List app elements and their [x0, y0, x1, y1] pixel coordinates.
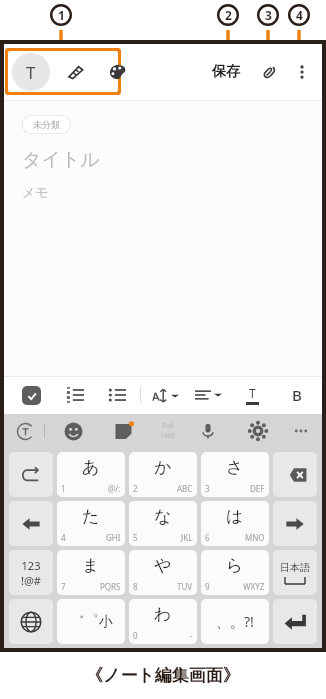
button[interactable]: さ	[201, 452, 269, 497]
staticText: 1	[58, 7, 65, 23]
staticText: 日本語	[280, 561, 310, 574]
staticText: 《ノート編集画面》	[86, 665, 240, 686]
staticText: 9	[205, 581, 210, 592]
button[interactable]: Numbered list	[62, 382, 88, 408]
button[interactable]: Japanese space	[273, 550, 317, 595]
staticText: PQRS	[100, 581, 121, 592]
button[interactable]: Bulleted list	[104, 382, 130, 408]
button[interactable]: More	[290, 420, 312, 442]
staticText: 1	[61, 483, 66, 494]
button[interactable]: た	[57, 501, 125, 546]
staticText: は	[226, 506, 244, 527]
button[interactable]: Cursor right	[273, 501, 317, 546]
button[interactable]: Emoji	[61, 419, 85, 443]
button[interactable]: Keyboard settings	[246, 419, 270, 443]
button[interactable]: 123 !@#	[9, 550, 53, 595]
button[interactable]: ら	[201, 550, 269, 595]
staticText: か	[154, 457, 172, 478]
button[interactable]: Voice input	[196, 419, 220, 443]
button[interactable]: ま	[57, 550, 125, 595]
button[interactable]: や	[129, 550, 197, 595]
staticText: GHI	[106, 532, 121, 543]
button[interactable]: Draw	[60, 56, 92, 88]
button[interactable]: 保存	[212, 52, 240, 92]
button[interactable]: ゛゜小	[57, 599, 125, 644]
staticText: あ	[82, 457, 100, 478]
staticText: や	[154, 555, 172, 576]
staticText: @/:	[108, 483, 121, 494]
staticText: タイトル	[22, 148, 100, 172]
staticText: わ	[154, 604, 172, 625]
staticText: 4	[61, 532, 66, 543]
staticText: ABC	[177, 483, 193, 494]
button[interactable]: Delete	[273, 452, 317, 497]
staticText: DEF	[250, 483, 265, 494]
button[interactable]: Alignment	[195, 387, 222, 403]
staticText: T	[26, 61, 36, 84]
staticText: 7	[61, 581, 66, 592]
staticText: Half	[161, 431, 175, 441]
staticText: 5	[133, 532, 138, 543]
button[interactable]: Translate	[12, 418, 38, 444]
staticText: WXYZ	[243, 581, 265, 592]
button[interactable]: か	[129, 452, 197, 497]
staticText: 未分類	[33, 119, 60, 130]
button[interactable]: Undo	[9, 452, 53, 497]
staticText: ま	[82, 555, 100, 576]
staticText: MNO	[245, 532, 265, 543]
button[interactable]: Text color	[240, 383, 264, 407]
staticText: 保存	[212, 63, 240, 81]
staticText: 8	[133, 581, 138, 592]
button[interactable]: Stickers	[111, 419, 135, 443]
staticText: ゛゜小	[70, 613, 113, 631]
staticText: な	[154, 506, 172, 527]
button[interactable]: B	[284, 382, 310, 408]
button[interactable]: Attach	[254, 57, 284, 87]
staticText: 0	[133, 630, 138, 641]
button[interactable]: Cursor left	[9, 501, 53, 546]
button[interactable]: Enter	[273, 599, 317, 644]
button[interactable]: Change language	[9, 599, 53, 644]
staticText: メモ	[22, 184, 49, 200]
staticText: -	[190, 630, 193, 641]
staticText: 3	[265, 7, 272, 23]
button[interactable]: わ	[129, 599, 197, 644]
staticText: 2	[225, 7, 232, 23]
staticText: さ	[226, 457, 244, 478]
button[interactable]: More options	[288, 58, 316, 86]
button[interactable]: Text mode	[12, 53, 50, 91]
button[interactable]: Font size	[151, 387, 179, 404]
staticText: 6	[205, 532, 210, 543]
staticText: 123 !@#	[21, 558, 41, 588]
button[interactable]: あ	[57, 452, 125, 497]
button[interactable]: Palette	[102, 56, 134, 88]
button[interactable]: 未分類	[22, 115, 71, 134]
staticText: JKL	[181, 532, 193, 543]
staticText: 4	[296, 7, 303, 23]
staticText: Full	[162, 421, 174, 431]
staticText: 、。?!	[216, 612, 254, 631]
button[interactable]: な	[129, 501, 197, 546]
button[interactable]: Full	[161, 421, 175, 441]
staticText: T	[249, 385, 256, 401]
staticText: B	[292, 385, 302, 405]
staticText: TUV	[177, 581, 193, 592]
button[interactable]: Checklist	[16, 380, 46, 410]
staticText: た	[82, 506, 100, 527]
button[interactable]: は	[201, 501, 269, 546]
staticText: ら	[226, 555, 244, 576]
button[interactable]: 、。?!	[201, 599, 269, 644]
staticText: 3	[205, 483, 210, 494]
staticText: 2	[133, 483, 138, 494]
